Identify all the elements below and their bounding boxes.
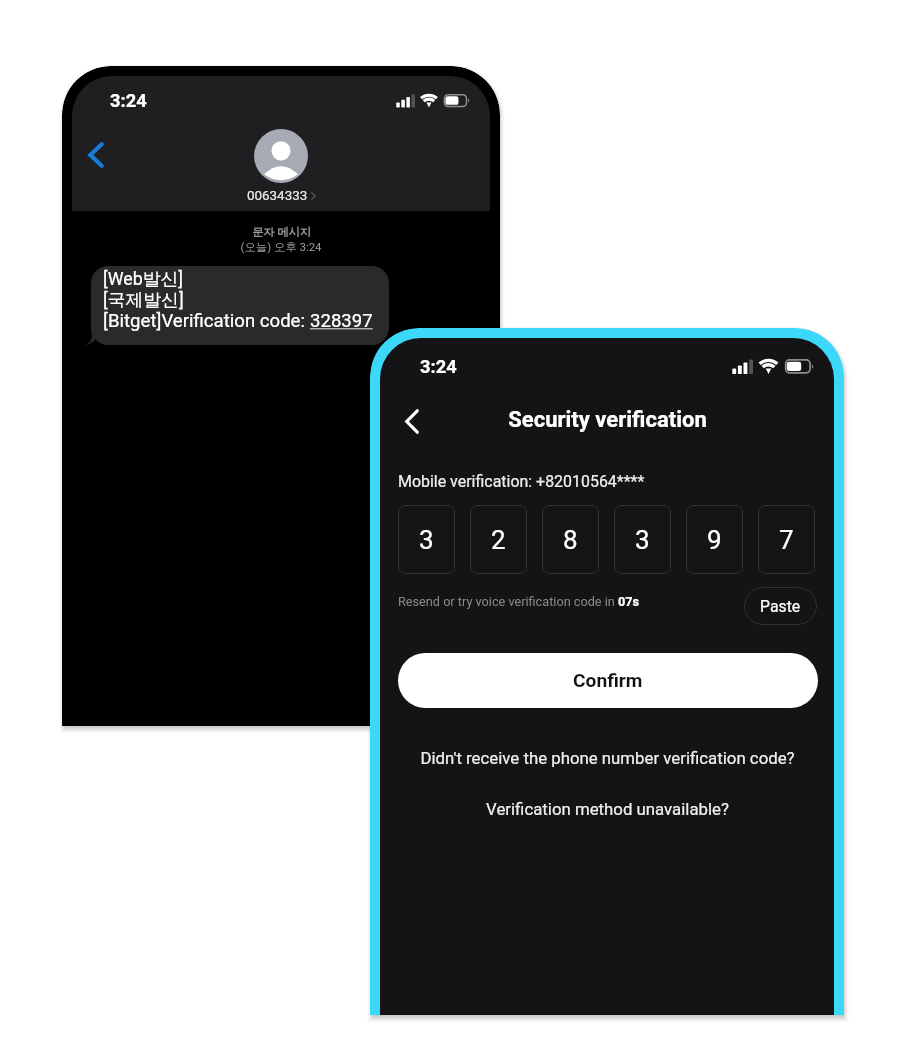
staticText: [Web발신] (103, 268, 183, 290)
staticText: 8 (563, 525, 578, 555)
staticText: Confirm (573, 669, 643, 692)
button[interactable]: Verification method unavailable? (486, 799, 729, 819)
button[interactable]: 7 (758, 505, 815, 574)
staticText: 3 (419, 525, 434, 555)
staticText: 3 (635, 525, 650, 555)
button[interactable]: Paste (744, 587, 817, 625)
button[interactable]: Didn't receive the phone number verifica… (420, 748, 795, 768)
staticText: 3:24 (420, 356, 457, 377)
staticText: (오늘) 오후 3:24 (240, 240, 322, 254)
staticText: 7 (779, 525, 794, 555)
staticText: 9 (707, 525, 722, 555)
button[interactable]: 3 (398, 505, 455, 574)
staticText: 328397 (310, 310, 373, 332)
button[interactable]: Back (78, 132, 114, 176)
staticText: Paste (760, 597, 801, 616)
button[interactable]: 2 (470, 505, 527, 574)
button[interactable]: 00634333 (247, 188, 316, 204)
staticText: 07s (618, 594, 640, 609)
button[interactable]: Confirm (398, 653, 818, 708)
button[interactable]: Back (393, 398, 433, 442)
button[interactable]: 8 (542, 505, 599, 574)
staticText: Security verification (508, 407, 707, 433)
staticText: 문자 메시지 (252, 225, 311, 239)
button[interactable]: 3 (614, 505, 671, 574)
staticText: [Bitget]Verification code: (103, 310, 310, 332)
staticText: [국제발신] (103, 289, 184, 311)
button[interactable]: [Web발신] (91, 266, 389, 345)
button[interactable]: 9 (686, 505, 743, 574)
staticText: 2 (491, 525, 506, 555)
staticText: 3:24 (110, 90, 147, 111)
staticText: 00634333 (247, 188, 308, 204)
staticText: Mobile verification: +82010564**** (398, 472, 645, 491)
staticText: Resend or try voice verification code in (398, 594, 618, 609)
